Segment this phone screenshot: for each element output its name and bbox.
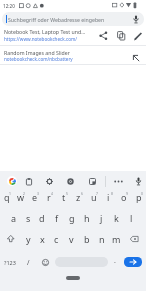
staticText: d xyxy=(39,212,45,224)
staticText: p xyxy=(136,191,142,203)
button[interactable]: x xyxy=(35,232,49,246)
staticText: 2 xyxy=(23,191,25,196)
staticText: j xyxy=(100,212,103,224)
staticText: . xyxy=(114,256,116,266)
staticText: z xyxy=(76,191,81,203)
staticText: ?123 xyxy=(4,259,16,266)
button[interactable] xyxy=(124,232,146,246)
staticText: Notebook Test, Laptop Test und... xyxy=(4,28,86,35)
staticText: Random Images and Slider xyxy=(4,49,70,56)
button[interactable]: k xyxy=(109,211,124,225)
button[interactable]: / xyxy=(19,255,37,269)
button[interactable]: Notebook Test, Laptop Test und... xyxy=(0,26,146,45)
button[interactable]: q xyxy=(0,189,14,203)
button[interactable]: a xyxy=(7,211,21,225)
staticText: l xyxy=(130,212,133,224)
button[interactable]: o xyxy=(116,189,131,203)
staticText: 8 xyxy=(111,191,113,196)
button[interactable]: f xyxy=(49,211,64,225)
staticText: w xyxy=(17,191,25,203)
staticText: b xyxy=(84,233,90,245)
staticText: 5 xyxy=(66,191,68,196)
button[interactable]: e xyxy=(28,189,42,203)
staticText: k xyxy=(114,212,119,224)
staticText: y xyxy=(26,233,31,245)
button[interactable]: r xyxy=(42,189,56,203)
button[interactable]: s xyxy=(21,211,35,225)
staticText: x xyxy=(40,233,45,245)
staticText: Suchbegriff oder Webadresse eingeben xyxy=(8,16,105,23)
button[interactable] xyxy=(0,232,21,246)
staticText: o xyxy=(121,191,127,203)
staticText: f xyxy=(55,212,59,224)
staticText: s xyxy=(26,212,31,224)
button[interactable]: n xyxy=(94,232,109,246)
staticText: e xyxy=(32,191,38,203)
button[interactable] xyxy=(66,176,75,186)
staticText: r xyxy=(47,191,51,203)
button[interactable] xyxy=(133,175,143,187)
staticText: notebookcheck.com/nbcbattery xyxy=(4,56,73,62)
staticText: 1 xyxy=(9,191,11,196)
button[interactable]: Random Images and Slider xyxy=(0,46,146,64)
button[interactable]: z xyxy=(71,189,86,203)
staticText: i xyxy=(107,191,110,203)
button[interactable] xyxy=(88,176,97,186)
button[interactable] xyxy=(7,176,17,186)
button[interactable]: i xyxy=(101,189,116,203)
staticText: 12:20 xyxy=(3,3,15,9)
staticText: v xyxy=(69,233,74,245)
button[interactable]: g xyxy=(64,211,79,225)
staticText: 4 xyxy=(51,191,53,196)
staticText: 7 xyxy=(96,191,98,196)
button[interactable]: c xyxy=(49,232,64,246)
staticText: u xyxy=(91,191,97,203)
staticText: 6 xyxy=(81,191,83,196)
button[interactable]: . xyxy=(108,255,122,269)
staticText: q xyxy=(4,191,10,203)
staticText: m xyxy=(112,233,121,245)
button[interactable]: ?123 xyxy=(0,255,19,269)
button[interactable]: v xyxy=(64,232,79,246)
staticText: https://www.notebookcheck.com/ xyxy=(4,36,77,42)
button[interactable]: t xyxy=(56,189,71,203)
button[interactable] xyxy=(55,257,108,267)
staticText: a xyxy=(11,212,17,224)
button[interactable] xyxy=(112,176,125,186)
button[interactable]: b xyxy=(79,232,94,246)
button[interactable] xyxy=(37,255,53,269)
button[interactable]: j xyxy=(94,211,109,225)
button[interactable] xyxy=(44,176,54,186)
staticText: 9 xyxy=(126,191,128,196)
staticText: / xyxy=(27,258,30,267)
staticText: 3 xyxy=(37,191,39,196)
button[interactable]: w xyxy=(14,189,28,203)
staticText: n xyxy=(99,233,105,245)
button[interactable]: m xyxy=(109,232,124,246)
staticText: t xyxy=(62,191,66,203)
button[interactable] xyxy=(24,176,33,186)
button[interactable]: y xyxy=(21,232,35,246)
button[interactable]: l xyxy=(124,211,139,225)
button[interactable]: h xyxy=(79,211,94,225)
staticText: c xyxy=(54,233,59,245)
button[interactable]: Suchbegriff oder Webadresse eingeben xyxy=(2,12,144,26)
staticText: 0 xyxy=(141,191,143,196)
staticText: h xyxy=(84,212,90,224)
button[interactable] xyxy=(124,257,142,267)
button[interactable]: p xyxy=(131,189,146,203)
button[interactable]: d xyxy=(35,211,49,225)
staticText: g xyxy=(69,212,75,224)
button[interactable]: u xyxy=(86,189,101,203)
